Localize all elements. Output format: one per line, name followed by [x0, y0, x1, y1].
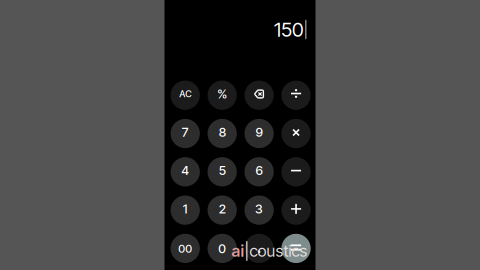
button[interactable]: Equals	[281, 234, 311, 263]
button[interactable]: All clear	[171, 80, 200, 110]
staticText: 00	[178, 242, 192, 255]
staticText: 5	[219, 163, 226, 178]
staticText: 0	[218, 241, 226, 256]
staticText: 3	[255, 201, 263, 216]
button[interactable]: Divide	[281, 80, 311, 110]
button[interactable]	[244, 195, 274, 225]
button[interactable]: Delete	[244, 80, 274, 110]
staticText: 4	[181, 163, 189, 178]
staticText: coustics	[249, 241, 307, 260]
button[interactable]	[207, 195, 237, 225]
button[interactable]	[207, 119, 237, 148]
button[interactable]	[244, 157, 274, 186]
button[interactable]: Decimal point	[244, 234, 274, 263]
staticText: 1	[183, 201, 188, 216]
staticText: AC	[179, 88, 191, 100]
button[interactable]	[207, 234, 237, 263]
staticText: 8	[219, 124, 226, 140]
staticText: 150	[274, 17, 304, 42]
button[interactable]	[171, 234, 200, 263]
button[interactable]	[171, 157, 200, 186]
staticText: 2	[219, 201, 226, 216]
button[interactable]: Minus	[281, 157, 311, 186]
button[interactable]: Plus	[281, 195, 311, 225]
staticText: |	[244, 241, 249, 260]
button[interactable]	[207, 157, 237, 186]
button[interactable]: Percent	[207, 80, 237, 110]
staticText: 6	[256, 163, 263, 178]
button[interactable]	[171, 119, 200, 148]
button[interactable]	[244, 119, 274, 148]
staticText: %	[217, 86, 227, 101]
staticText: 9	[256, 124, 263, 140]
button[interactable]: Multiply	[281, 119, 311, 148]
staticText: ai	[231, 241, 244, 260]
staticText: 7	[182, 124, 189, 140]
button[interactable]	[171, 195, 200, 225]
